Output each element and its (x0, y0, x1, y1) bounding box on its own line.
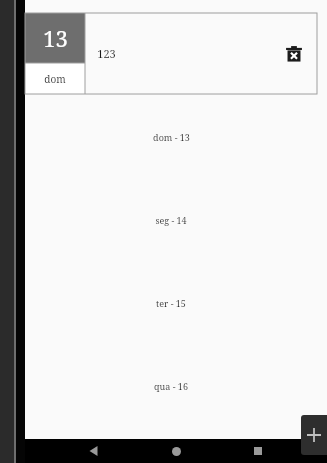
button[interactable]: Delete (283, 43, 305, 65)
staticText: seg - 14 (155, 214, 187, 226)
button[interactable]: 13 (25, 13, 317, 94)
staticText: 123 (97, 46, 116, 61)
staticText: dom (44, 72, 66, 86)
button[interactable]: Add (301, 415, 327, 455)
button[interactable]: seg - 14 (25, 213, 317, 227)
staticText: 13 (43, 23, 68, 53)
button[interactable]: ter - 15 (25, 296, 317, 310)
button[interactable]: dom - 13 (25, 130, 317, 144)
button[interactable]: Home (163, 439, 189, 463)
button[interactable]: Recent apps (245, 439, 271, 463)
staticText: qua - 16 (154, 380, 188, 392)
staticText: dom - 13 (153, 131, 190, 143)
button[interactable]: qua - 16 (25, 379, 317, 393)
staticText: ter - 15 (156, 297, 186, 309)
button[interactable]: Back (81, 439, 107, 463)
